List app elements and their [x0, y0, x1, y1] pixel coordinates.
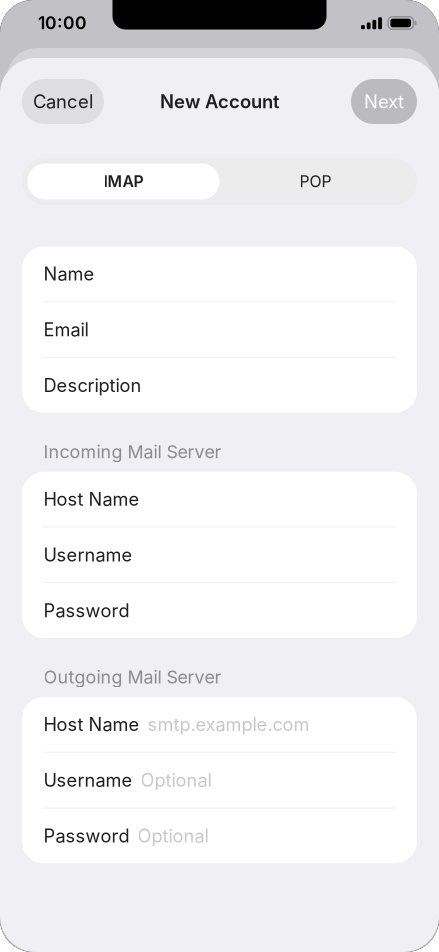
staticText: POP — [299, 172, 331, 191]
staticText: Outgoing Mail Server — [43, 666, 221, 688]
staticText: Email — [43, 319, 88, 341]
staticText: Optional — [137, 825, 208, 847]
button[interactable]: Password — [22, 583, 417, 638]
staticText: Password — [43, 825, 129, 847]
button[interactable]: Email — [22, 302, 417, 357]
button[interactable]: Host Name — [22, 472, 417, 527]
button[interactable]: Description — [22, 358, 417, 413]
staticText: Host Name — [43, 713, 139, 735]
button[interactable]: POP — [219, 163, 411, 199]
button[interactable]: Username — [22, 753, 417, 808]
staticText: Username — [43, 544, 132, 566]
staticText: smtp.example.com — [147, 713, 309, 735]
staticText: Username — [43, 769, 132, 791]
button[interactable]: Name — [22, 246, 417, 301]
staticText: IMAP — [103, 172, 143, 191]
staticText: Next — [364, 90, 404, 113]
button[interactable]: Password — [22, 808, 417, 863]
staticText: New Account — [160, 90, 279, 113]
staticText: Incoming Mail Server — [43, 441, 221, 462]
button[interactable]: Username — [22, 527, 417, 582]
staticText: Cancel — [33, 90, 93, 113]
button[interactable]: Next — [351, 79, 417, 124]
staticText: Name — [43, 263, 94, 285]
staticText: Password — [43, 600, 129, 622]
staticText: Description — [43, 374, 141, 396]
button[interactable]: Host Name — [22, 697, 417, 752]
button[interactable]: Cancel — [22, 79, 104, 124]
staticText: 10:00 — [38, 12, 87, 33]
staticText: Optional — [140, 769, 211, 791]
button[interactable]: IMAP — [27, 163, 219, 199]
staticText: Host Name — [43, 488, 139, 510]
